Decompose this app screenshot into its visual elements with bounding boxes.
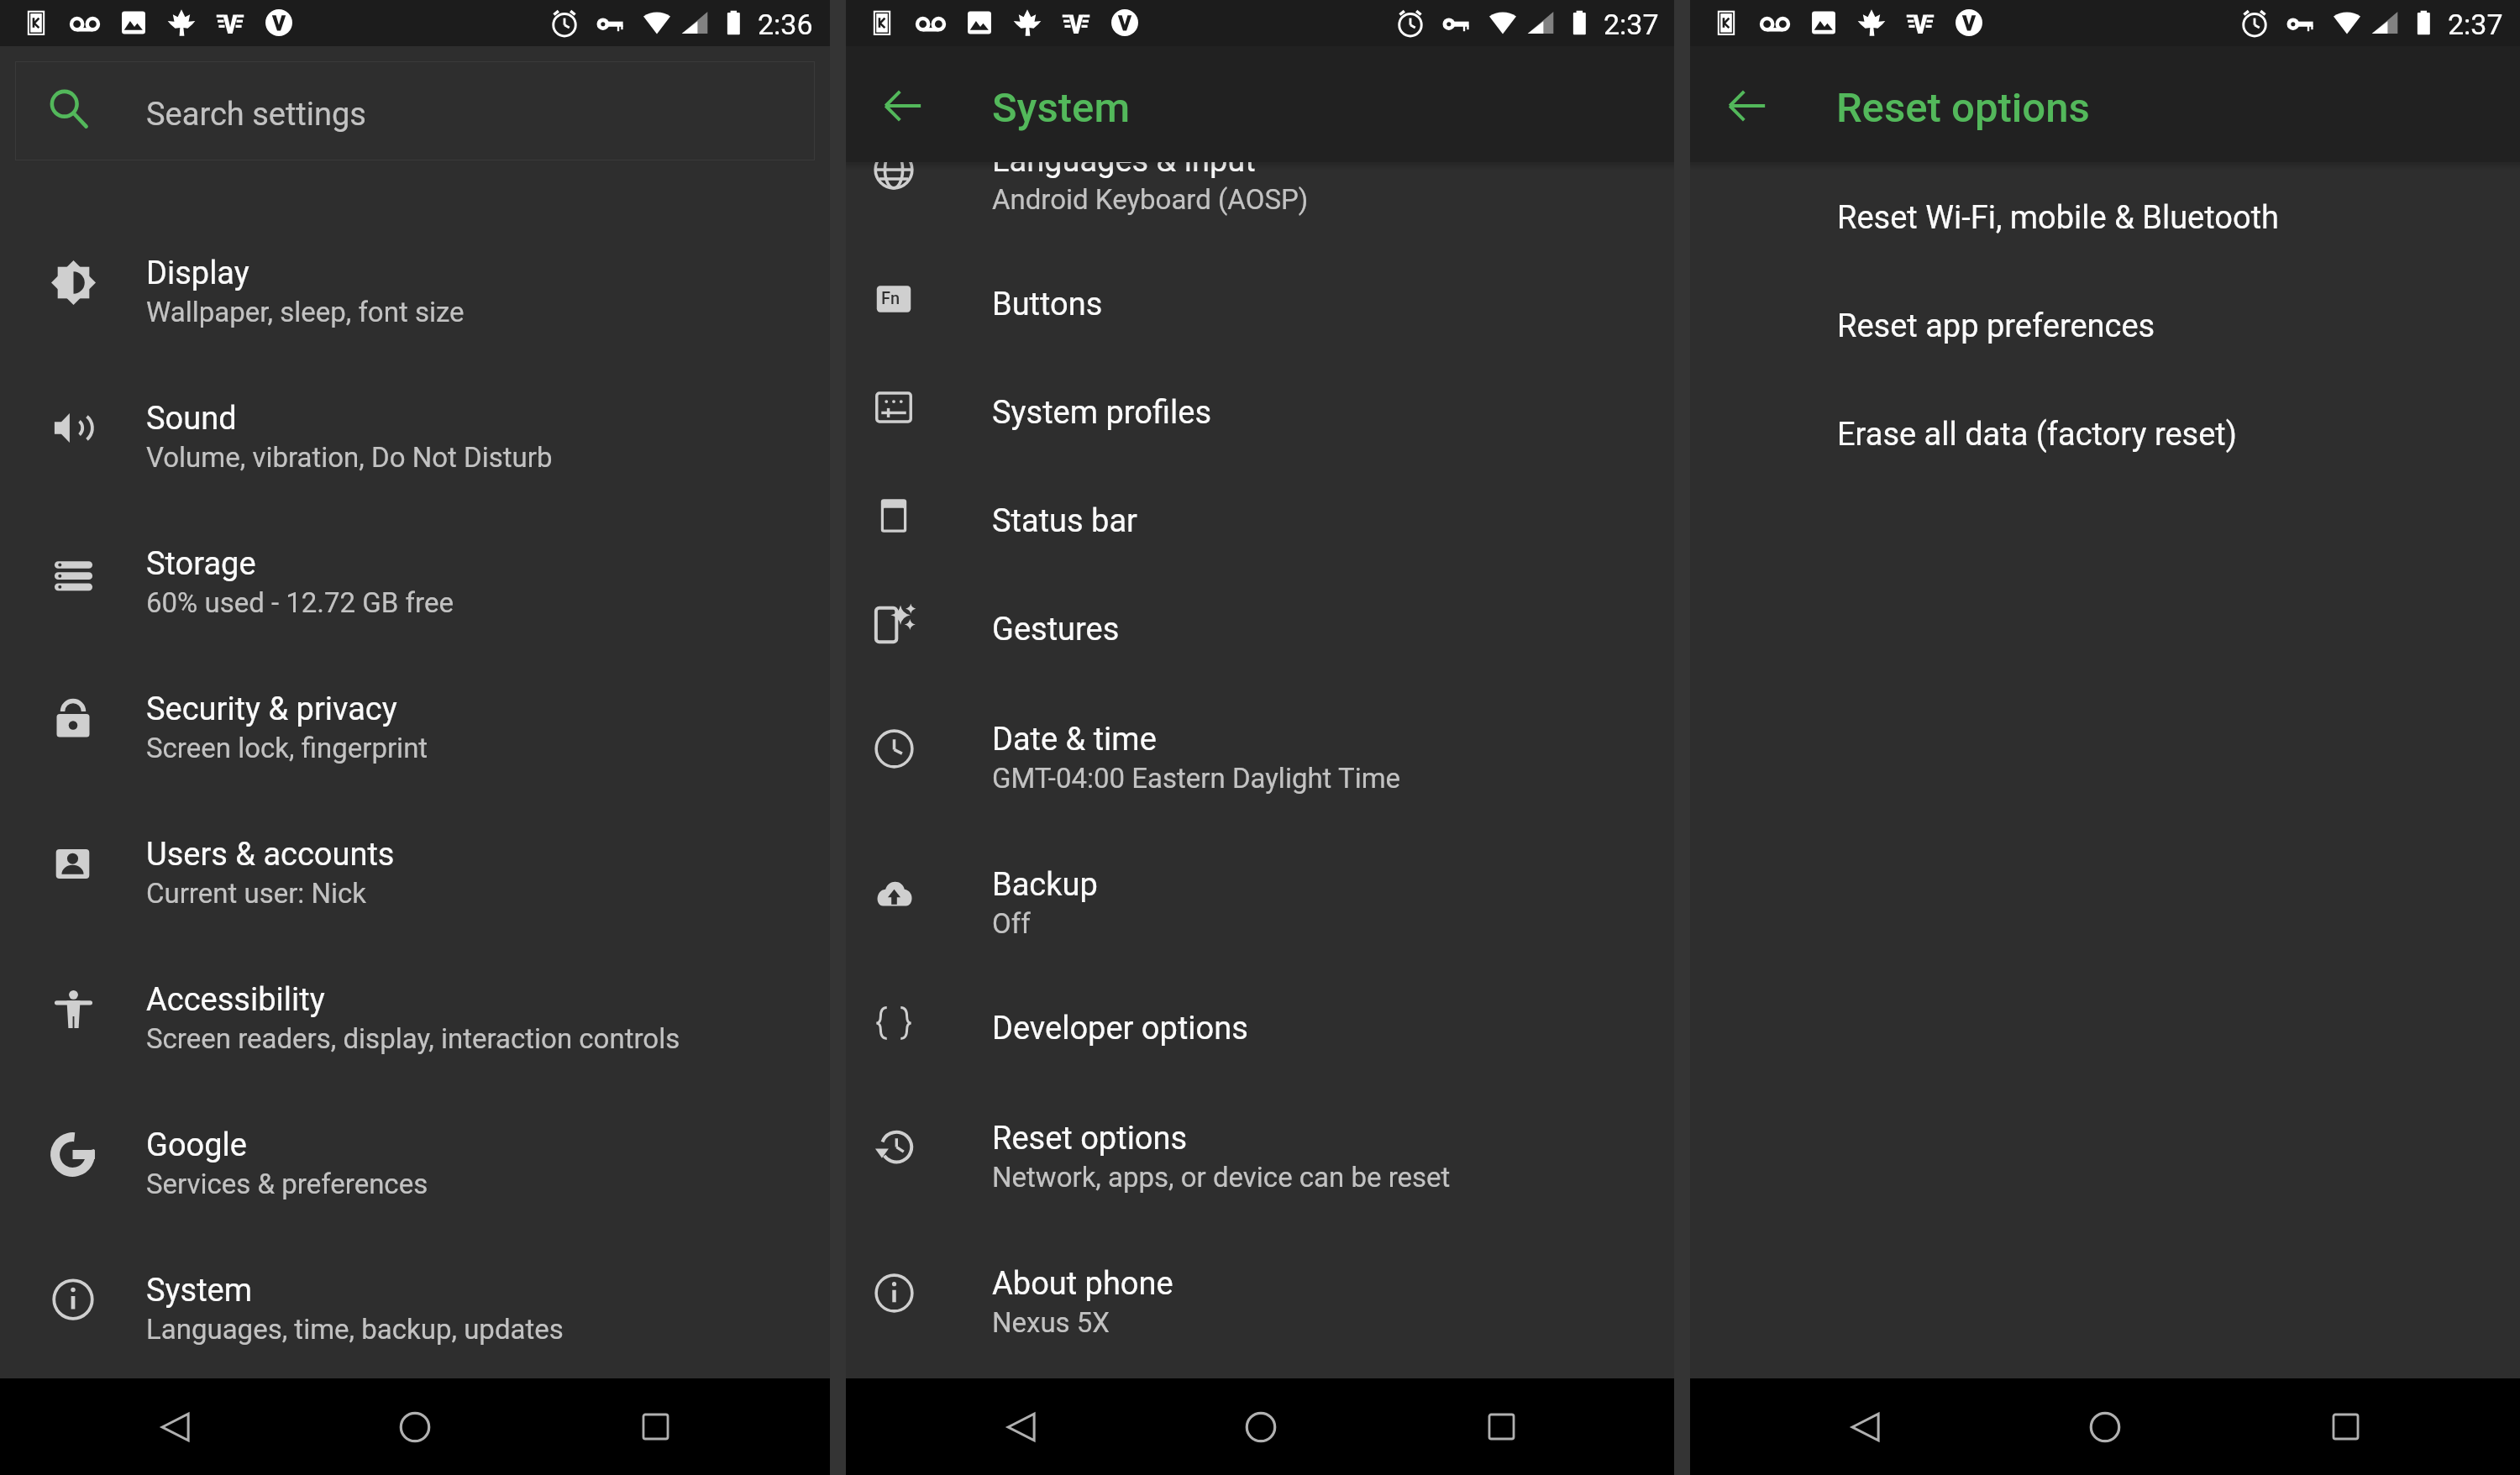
staticText: Gestures — [992, 611, 1120, 648]
button[interactable]: Home — [2051, 1378, 2159, 1475]
button[interactable]: Home — [1207, 1378, 1315, 1475]
staticText: Erase all data (factory reset) — [1837, 416, 2238, 454]
button[interactable]: Reset Wi-Fi, mobile & Bluetooth — [1690, 173, 2520, 281]
staticText: Search settings — [146, 96, 366, 134]
button[interactable]: Home — [361, 1378, 469, 1475]
button[interactable]: Display — [0, 227, 830, 372]
staticText: Screen lock, fingerprint — [146, 732, 428, 764]
staticText: Network, apps, or device can be reset — [992, 1161, 1451, 1194]
staticText: Android Keyboard (AOSP) — [992, 183, 1309, 216]
staticText: Reset options — [992, 1120, 1188, 1157]
button[interactable]: About phone — [846, 1237, 1674, 1383]
button[interactable]: Back — [1706, 65, 1788, 147]
button[interactable]: Recents — [1447, 1378, 1555, 1475]
button[interactable]: Sound — [0, 372, 830, 517]
button[interactable]: System profiles — [846, 368, 1674, 476]
button[interactable]: Reset app preferences — [1690, 281, 2520, 390]
staticText: Reset options — [1836, 84, 2090, 132]
button[interactable]: Backup — [846, 838, 1674, 984]
staticText: 2:37 — [2448, 8, 2503, 41]
staticText: Nexus 5X — [992, 1306, 1110, 1339]
staticText: Status bar — [992, 502, 1137, 540]
staticText: Developer options — [992, 1010, 1248, 1047]
staticText: Security & privacy — [146, 690, 397, 728]
staticText: Screen readers, display, interaction con… — [146, 1022, 680, 1055]
button[interactable]: Reset options — [846, 1092, 1674, 1237]
staticText: 2:36 — [758, 8, 813, 41]
staticText: Off — [992, 907, 1031, 940]
staticText: About phone — [992, 1265, 1173, 1303]
button[interactable]: Back — [968, 1378, 1075, 1475]
button[interactable]: Date & time — [846, 693, 1674, 838]
button[interactable]: Buttons — [846, 260, 1674, 368]
button[interactable]: Gestures — [846, 585, 1674, 693]
staticText: Languages & input — [992, 142, 1256, 180]
staticText: GMT-04:00 Eastern Daylight Time — [992, 762, 1401, 795]
button[interactable]: Back — [1812, 1378, 1919, 1475]
staticText: Volume, vibration, Do Not Disturb — [146, 441, 553, 474]
button[interactable]: Back — [862, 65, 944, 147]
staticText: 60% used - 12.72 GB free — [146, 586, 454, 619]
button[interactable]: Recents — [601, 1378, 709, 1475]
button[interactable]: Developer options — [846, 984, 1674, 1092]
button[interactable]: Languages & input — [846, 114, 1674, 260]
button[interactable]: Search settings — [15, 61, 815, 160]
staticText: Sound — [146, 400, 237, 438]
staticText: Backup — [992, 866, 1098, 904]
button[interactable]: Status bar — [846, 476, 1674, 585]
button[interactable]: Storage — [0, 517, 830, 663]
button[interactable]: Google — [0, 1099, 830, 1244]
staticText: Reset Wi-Fi, mobile & Bluetooth — [1837, 199, 2280, 237]
staticText: Fn — [881, 288, 900, 307]
button[interactable]: System — [0, 1244, 830, 1389]
button[interactable]: Back — [122, 1378, 229, 1475]
button[interactable]: Recents — [2292, 1378, 2399, 1475]
button[interactable]: Accessibility — [0, 953, 830, 1099]
staticText: Current user: Nick — [146, 877, 367, 910]
staticText: System — [146, 1272, 253, 1310]
button[interactable]: Users & accounts — [0, 808, 830, 953]
button[interactable]: Security & privacy — [0, 663, 830, 808]
staticText: Accessibility — [146, 981, 325, 1019]
staticText: Display — [146, 255, 249, 292]
staticText: Buttons — [992, 286, 1103, 323]
staticText: Wallpaper, sleep, font size — [146, 296, 465, 328]
staticText: 2:37 — [1604, 8, 1659, 41]
staticText: Google — [146, 1126, 247, 1164]
button[interactable]: Erase all data (factory reset) — [1690, 390, 2520, 498]
staticText: Services & preferences — [146, 1168, 428, 1200]
staticText: System — [992, 84, 1131, 132]
staticText: Users & accounts — [146, 836, 395, 874]
staticText: Reset app preferences — [1837, 307, 2155, 345]
staticText: Languages, time, backup, updates — [146, 1313, 564, 1346]
staticText: Storage — [146, 545, 256, 583]
staticText: Date & time — [992, 721, 1157, 758]
staticText: System profiles — [992, 394, 1212, 432]
